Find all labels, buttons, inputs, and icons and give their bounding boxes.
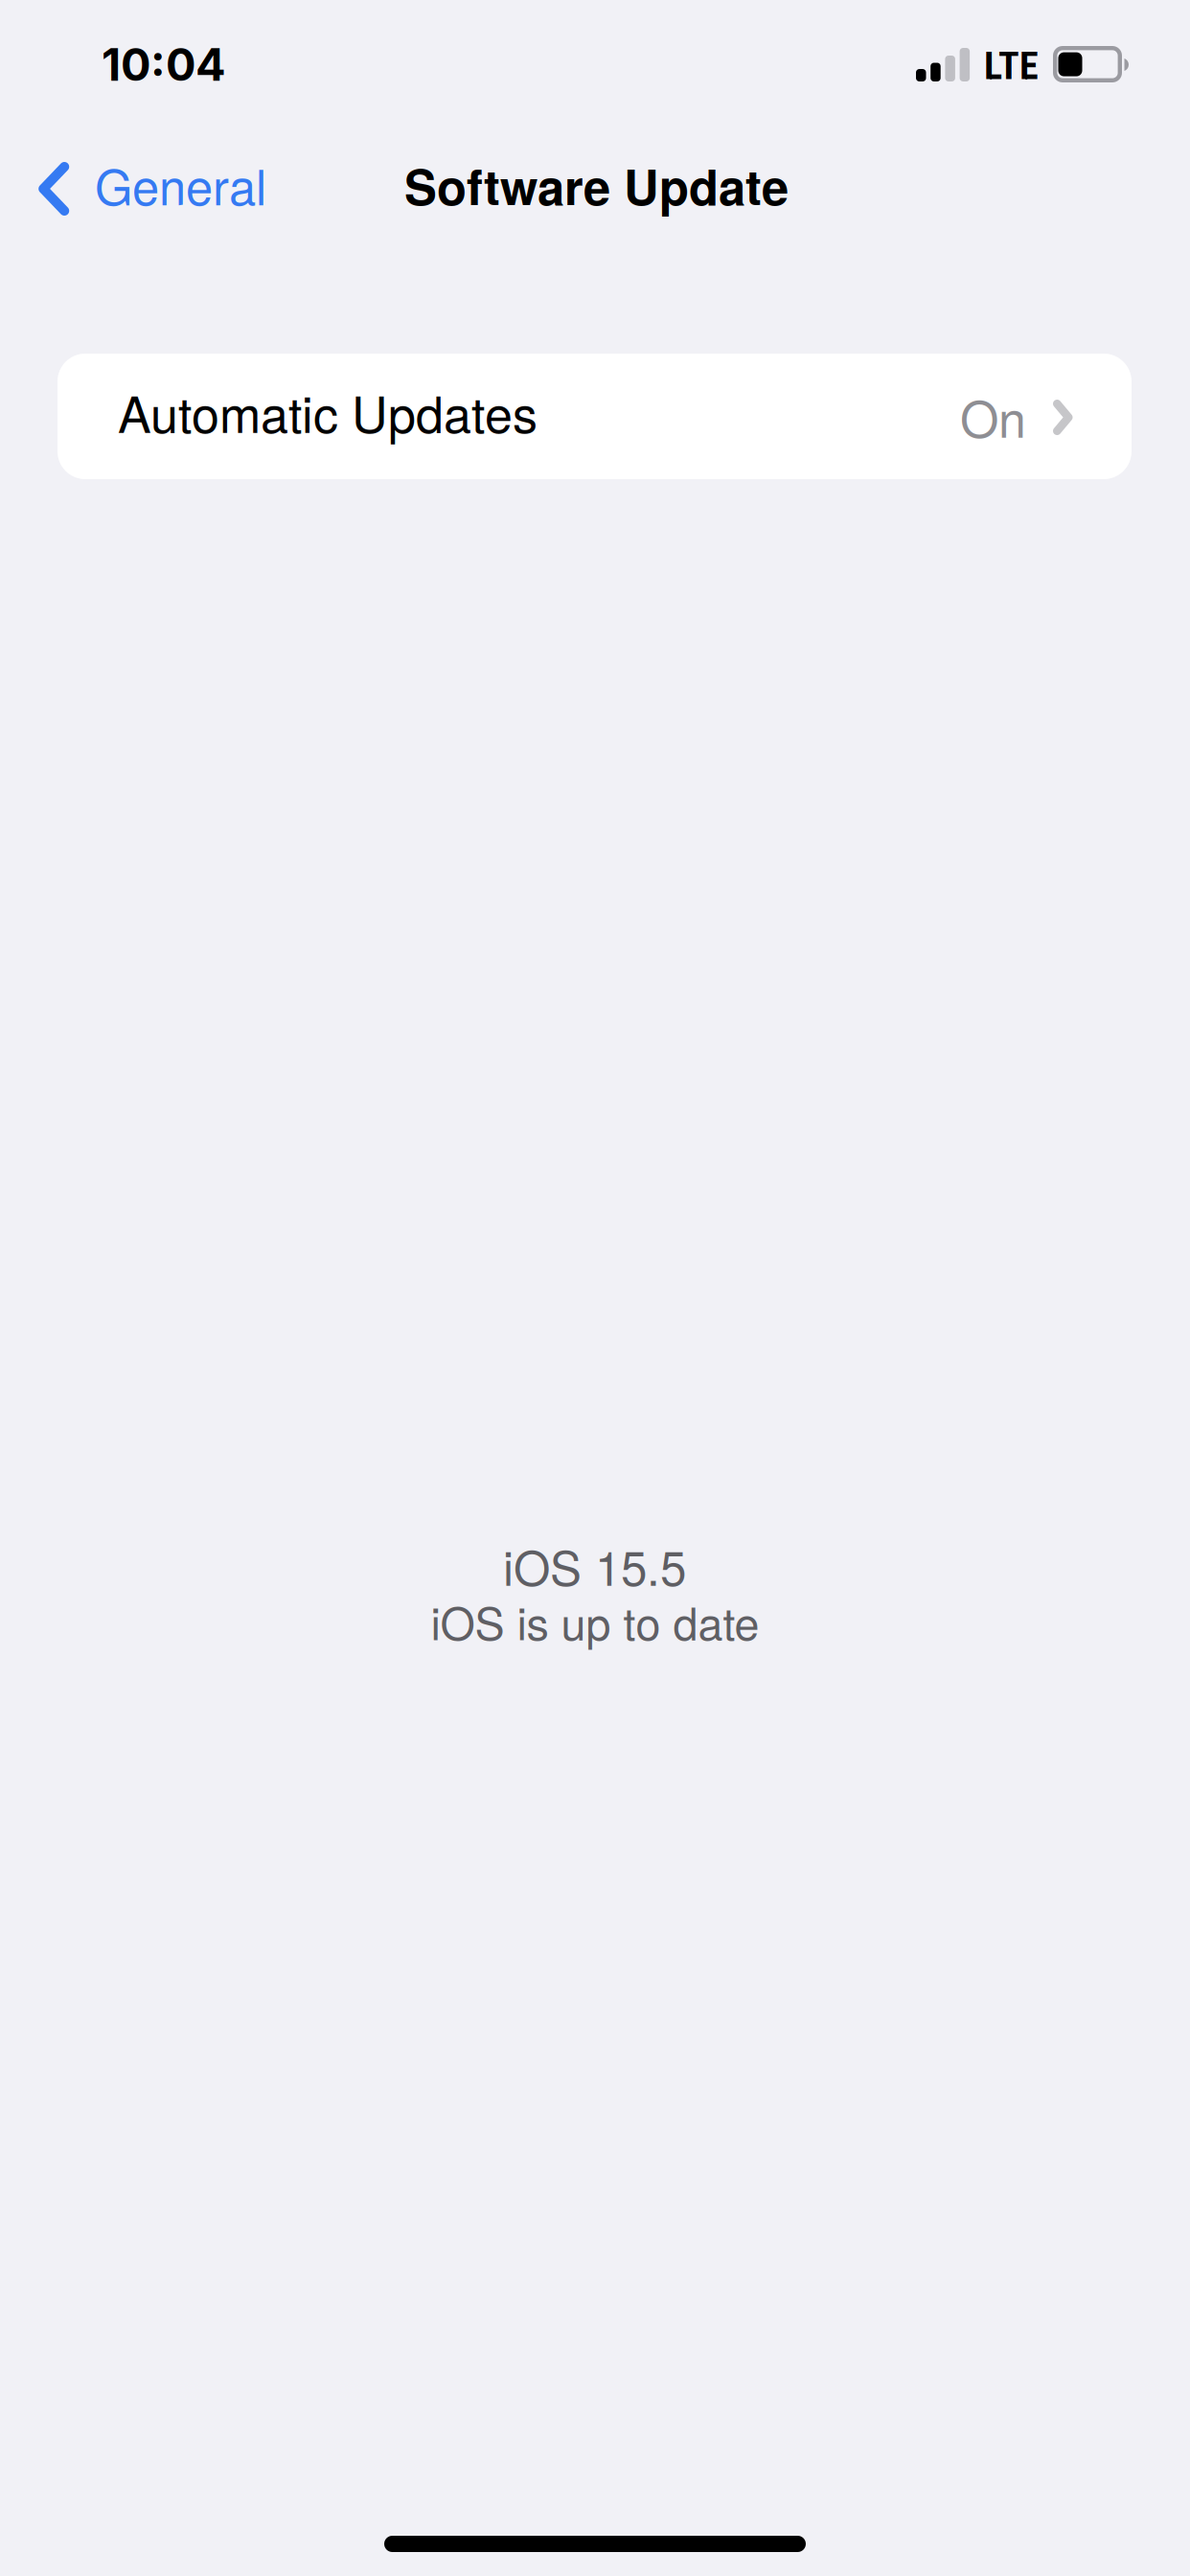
staticText: General — [95, 149, 266, 219]
staticText: 10:04 — [102, 37, 226, 92]
staticText: Software Update — [404, 150, 789, 220]
staticText: iOS 15.5 — [503, 1531, 686, 1599]
staticText: On — [960, 380, 1026, 452]
staticText: Automatic Updates — [118, 376, 538, 447]
button[interactable]: Automatic Updates — [57, 354, 1132, 479]
staticText: iOS is up to date — [431, 1589, 759, 1653]
staticText: LTE — [984, 44, 1039, 89]
button[interactable]: General — [33, 135, 307, 227]
